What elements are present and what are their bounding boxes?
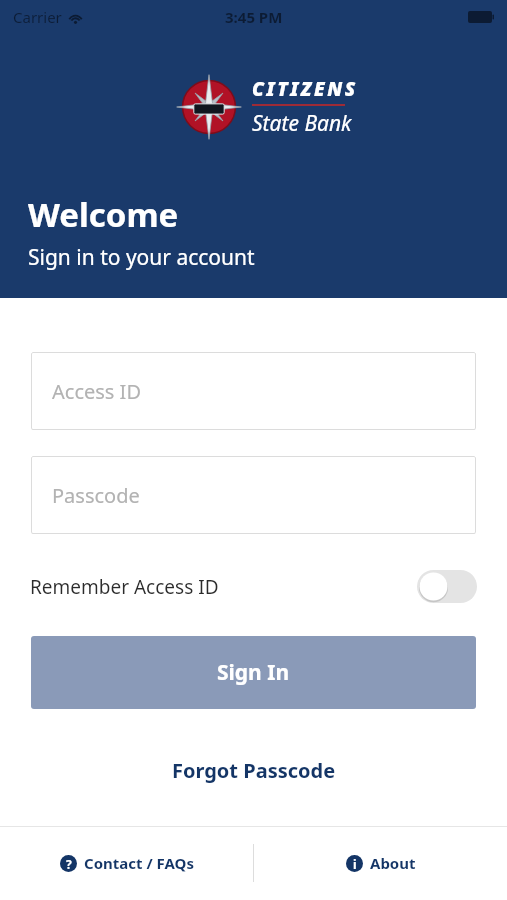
other: About bbox=[346, 855, 363, 872]
staticText: About bbox=[370, 853, 416, 873]
staticText: Sign In bbox=[217, 658, 290, 687]
staticText: Welcome bbox=[28, 192, 179, 237]
other: Contact / FAQs bbox=[60, 855, 77, 872]
staticText: Forgot Passcode bbox=[172, 757, 336, 784]
other: Citizens State Bank logo bbox=[176, 74, 242, 140]
button[interactable]: About bbox=[254, 826, 507, 900]
staticText: Carrier bbox=[13, 7, 62, 27]
button[interactable]: Contact / FAQs bbox=[0, 826, 253, 900]
button[interactable]: Passcode bbox=[31, 456, 476, 534]
staticText: Remember Access ID bbox=[30, 574, 219, 600]
staticText: Access ID bbox=[52, 378, 141, 405]
staticText: Sign in to your account bbox=[28, 243, 255, 272]
button[interactable]: Remember Access ID toggle bbox=[417, 570, 477, 603]
staticText: i bbox=[353, 856, 357, 872]
staticText: Contact / FAQs bbox=[84, 853, 194, 873]
button[interactable]: Access ID bbox=[31, 352, 476, 430]
staticText: CITIZENS bbox=[252, 76, 358, 102]
button[interactable]: Forgot Passcode bbox=[154, 751, 354, 790]
staticText: Passcode bbox=[52, 482, 140, 509]
staticText: ? bbox=[66, 856, 72, 872]
button[interactable]: Sign In bbox=[31, 636, 476, 709]
staticText: 3:45 PM bbox=[225, 7, 283, 27]
staticText: State Bank bbox=[252, 109, 352, 138]
button[interactable]: Remember Access ID bbox=[0, 562, 507, 611]
